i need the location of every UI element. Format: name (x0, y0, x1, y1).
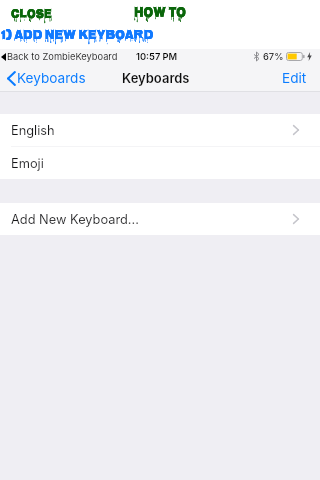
staticText: 10:57 PM (136, 51, 178, 62)
staticText: 1) ADD NEW KEYBOARD (1, 25, 154, 47)
staticText: HOW TO (134, 2, 186, 26)
staticText: HOW TO (134, 2, 186, 26)
button[interactable]: Add New Keyboard... (0, 203, 320, 235)
staticText: 67% (263, 51, 284, 62)
button[interactable]: Keyboards (0, 64, 92, 91)
staticText: Add New Keyboard... (11, 212, 139, 227)
button[interactable]: English (0, 114, 320, 146)
staticText: Emoji (11, 156, 44, 171)
staticText: Edit (282, 70, 307, 86)
button[interactable]: CLOSE (11, 3, 52, 27)
staticText: English (11, 123, 55, 138)
staticText: CLOSE (11, 3, 52, 27)
staticText: Keyboards (122, 70, 190, 86)
button[interactable]: Edit (270, 64, 320, 91)
button[interactable]: Emoji (0, 147, 320, 179)
staticText: Back to ZombieKeyboard (7, 51, 118, 62)
staticText: CLOSE (11, 3, 52, 27)
staticText: HOW TO (134, 2, 186, 26)
button[interactable]: Back to ZombieKeyboard (1, 51, 118, 62)
staticText: 1) ADD NEW KEYBOARD (1, 25, 154, 47)
staticText: 1) ADD NEW KEYBOARD (1, 25, 154, 47)
staticText: Keyboards (17, 70, 86, 86)
staticText: CLOSE (11, 3, 52, 27)
